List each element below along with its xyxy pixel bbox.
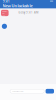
staticText: a new item xyxy=(2,21,6,24)
staticText: Today 9:41 AM xyxy=(18,11,38,14)
staticText: New Unlockable xyxy=(2,3,32,8)
staticText: Congrats! xyxy=(2,11,7,14)
staticText: ••• xyxy=(50,0,53,3)
staticText: 9:41 xyxy=(3,0,10,3)
button[interactable]: Send xyxy=(46,89,54,93)
button[interactable]: Type a message xyxy=(10,89,44,93)
staticText: You unlocked xyxy=(2,15,7,20)
staticText: Type a message xyxy=(12,90,24,92)
